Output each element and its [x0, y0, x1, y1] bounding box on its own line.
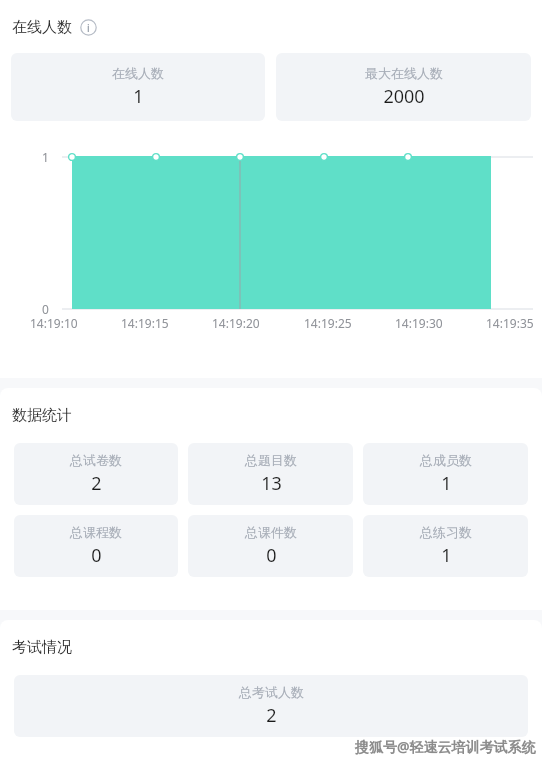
staticText: 总课程数	[70, 524, 122, 540]
staticText: 1	[42, 149, 49, 165]
button[interactable]: Info	[80, 19, 97, 36]
staticText: 最大在线人数	[365, 65, 443, 81]
staticText: 14:19:25	[304, 315, 352, 331]
staticText: 14:19:30	[395, 315, 443, 331]
staticText: 考试情况	[12, 638, 72, 657]
staticText: i	[87, 21, 90, 35]
staticText: 2	[266, 703, 277, 728]
button[interactable]: 总考试人数	[14, 675, 528, 737]
staticText: 14:19:10	[30, 315, 78, 331]
button[interactable]: 总题目数	[188, 443, 353, 505]
staticText: 0	[91, 543, 102, 568]
staticText: 总成员数	[420, 452, 472, 468]
staticText: 搜狐号@轻速云培训考试系统	[355, 737, 536, 756]
staticText: 2000	[383, 84, 425, 109]
staticText: 14:19:15	[121, 315, 169, 331]
staticText: 总试卷数	[70, 452, 122, 468]
staticText: 数据统计	[12, 406, 72, 425]
staticText: 总题目数	[245, 452, 297, 468]
button[interactable]: 在线人数	[11, 53, 265, 121]
button[interactable]: 总练习数	[363, 515, 528, 577]
staticText: 1	[441, 471, 452, 496]
staticText: 13	[261, 471, 282, 496]
button[interactable]: 最大在线人数	[276, 53, 531, 121]
staticText: 1	[441, 543, 452, 568]
button[interactable]: 总课程数	[14, 515, 178, 577]
staticText: 0	[266, 543, 277, 568]
staticText: 2	[91, 471, 102, 496]
staticText: 在线人数	[12, 18, 72, 37]
staticText: 0	[42, 301, 49, 317]
staticText: 14:19:35	[486, 315, 534, 331]
staticText: 总课件数	[245, 524, 297, 540]
staticText: 在线人数	[112, 65, 164, 81]
button[interactable]: 总成员数	[363, 443, 528, 505]
button[interactable]: 总课件数	[188, 515, 353, 577]
staticText: 总练习数	[420, 524, 472, 540]
staticText: 14:19:20	[212, 315, 260, 331]
staticText: 1	[133, 84, 144, 109]
staticText: 总考试人数	[239, 684, 304, 700]
button[interactable]: 总试卷数	[14, 443, 178, 505]
